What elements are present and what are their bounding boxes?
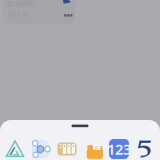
button[interactable]: Numbers (109, 139, 129, 159)
button[interactable]: Folder (83, 139, 103, 159)
staticText: ••• (64, 10, 73, 21)
button[interactable]: Five (135, 139, 155, 159)
button[interactable]: Drive (5, 139, 25, 159)
staticText: drivefts (7, 0, 36, 9)
staticText: 28天前 (7, 10, 29, 18)
button[interactable]: More actions (62, 12, 74, 20)
button[interactable]: Graph (31, 139, 51, 159)
staticText: 123 (107, 139, 131, 159)
button[interactable]: Files (57, 139, 77, 159)
